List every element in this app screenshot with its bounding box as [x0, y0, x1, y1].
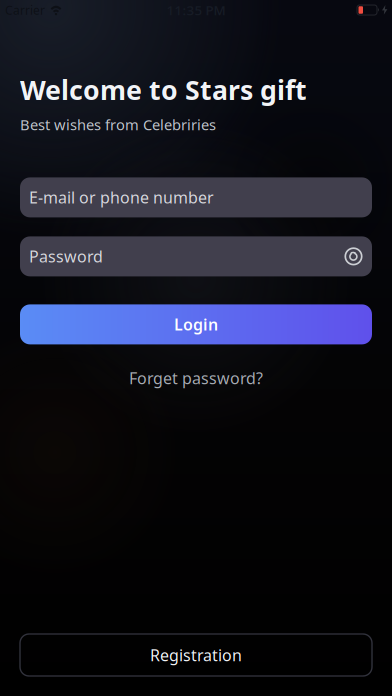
staticText: 11:35 PM: [166, 1, 225, 19]
staticText: E-mail or phone number: [29, 187, 214, 208]
staticText: Registration: [150, 644, 242, 666]
staticText: Carrier: [5, 2, 45, 18]
button[interactable]: Password: [20, 236, 372, 276]
staticText: Login: [174, 314, 218, 335]
button[interactable]: Login: [20, 304, 372, 344]
button[interactable]: Show password: [344, 247, 372, 266]
button[interactable]: E-mail or phone number: [20, 177, 372, 217]
button[interactable]: Registration: [20, 634, 372, 676]
staticText: Welcome to Stars gift: [20, 72, 307, 107]
button[interactable]: Forget password?: [129, 367, 263, 389]
staticText: Forget password?: [129, 367, 263, 389]
staticText: Best wishes from Celebriries: [20, 115, 216, 134]
staticText: Password: [29, 246, 103, 267]
